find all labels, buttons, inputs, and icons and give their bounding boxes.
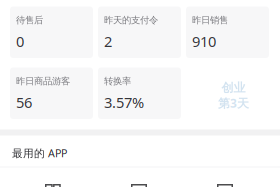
button[interactable]: 昨日商品游客 — [10, 67, 93, 119]
staticText: 第3天 — [218, 95, 249, 111]
button[interactable]: 最用的 APP — [12, 145, 152, 161]
staticText: 910 — [192, 31, 216, 51]
staticText: 待售后 — [16, 14, 43, 26]
button[interactable]: 昨日销售 — [186, 6, 269, 58]
button[interactable]: 商品 — [182, 184, 268, 187]
button[interactable]: 应用 — [10, 184, 96, 187]
staticText: 昨日商品游客 — [16, 75, 70, 87]
staticText: 昨天的支付令 — [104, 14, 158, 26]
staticText: 56 — [16, 92, 32, 112]
staticText: 最用的 APP — [12, 146, 67, 160]
staticText: 2 — [104, 31, 112, 51]
button[interactable]: 转换率 — [98, 67, 181, 119]
staticText: 3.57% — [104, 92, 144, 112]
staticText: 0 — [16, 31, 24, 51]
button[interactable]: 待售后 — [10, 6, 93, 58]
button[interactable]: 昨天的支付令 — [98, 6, 181, 58]
button[interactable]: 订单 — [96, 184, 182, 187]
staticText: 昨日销售 — [192, 14, 228, 26]
staticText: 转换率 — [104, 75, 131, 87]
staticText: 创业 — [221, 80, 245, 95]
